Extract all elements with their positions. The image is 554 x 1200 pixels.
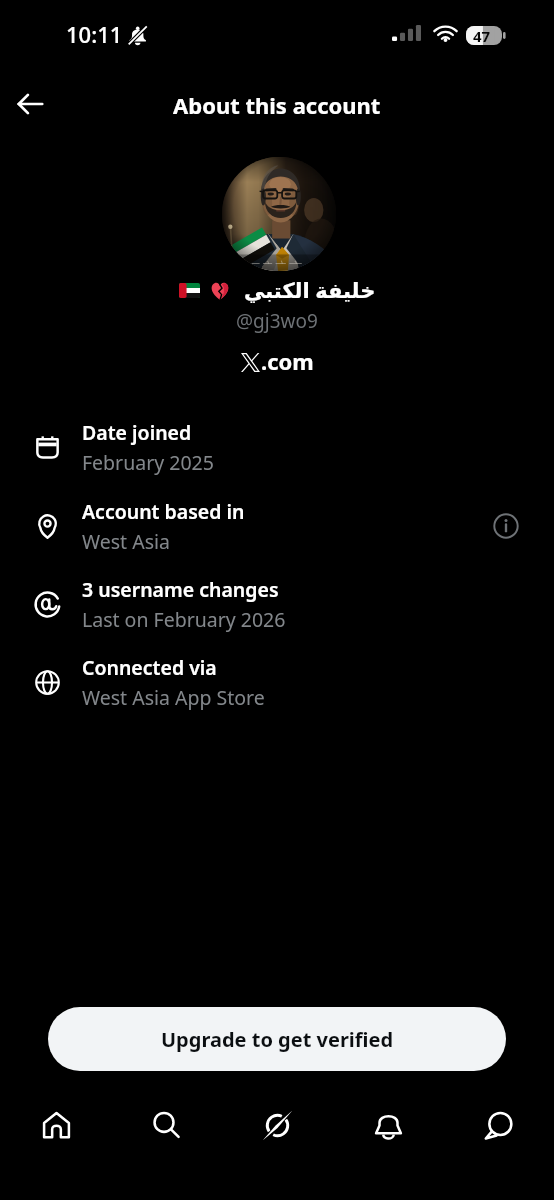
staticText: About this account	[173, 90, 381, 120]
staticText: 3 username changes	[82, 576, 279, 603]
staticText: .com	[261, 346, 314, 376]
button[interactable]: Messages	[470, 1097, 526, 1153]
button[interactable]: Search	[138, 1097, 194, 1153]
button[interactable]: Date joined	[0, 408, 554, 486]
staticText: Connected via	[82, 654, 217, 681]
staticText: @gj3wo9	[236, 308, 318, 334]
button[interactable]: Account based in	[0, 487, 554, 565]
staticText: Upgrade to get verified	[161, 1026, 394, 1053]
staticText: خليفة الكتبي	[244, 276, 376, 305]
staticText: Last on February 2026	[82, 606, 286, 633]
button[interactable]: Grok	[249, 1097, 305, 1153]
staticText: Account based in	[82, 498, 245, 525]
staticText: February 2025	[82, 449, 214, 476]
button[interactable]: Home	[28, 1097, 84, 1153]
button[interactable]: Upgrade to get verified	[48, 1007, 506, 1071]
staticText: West Asia	[82, 528, 170, 555]
button[interactable]: Notifications	[360, 1097, 416, 1153]
staticText: 47	[473, 26, 491, 45]
button[interactable]: More info	[488, 508, 524, 544]
staticText: Date joined	[82, 419, 192, 446]
staticText: West Asia App Store	[82, 684, 265, 711]
button[interactable]: 3 username changes	[0, 565, 554, 643]
button[interactable]: Connected via	[0, 643, 554, 721]
button[interactable]: Back	[6, 80, 54, 128]
staticText: 10:11	[66, 19, 123, 49]
